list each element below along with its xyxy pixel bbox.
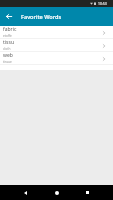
button[interactable]: Back bbox=[10, 185, 41, 200]
staticText: 10:53 bbox=[98, 1, 107, 6]
staticText: tissue bbox=[3, 60, 12, 63]
button[interactable]: Home bbox=[41, 185, 72, 200]
button[interactable]: tissu bbox=[0, 39, 113, 52]
staticText: web bbox=[3, 52, 13, 59]
button[interactable]: web bbox=[0, 52, 113, 65]
staticText: Favorite Words bbox=[21, 13, 62, 21]
staticText: etoffe bbox=[3, 34, 12, 37]
staticText: cloth bbox=[3, 47, 11, 50]
button[interactable]: Recent apps bbox=[72, 185, 103, 200]
button[interactable]: Back bbox=[0, 7, 18, 26]
staticText: tissu bbox=[3, 39, 14, 46]
button[interactable]: fabric bbox=[0, 26, 113, 39]
staticText: fabric bbox=[3, 26, 17, 33]
